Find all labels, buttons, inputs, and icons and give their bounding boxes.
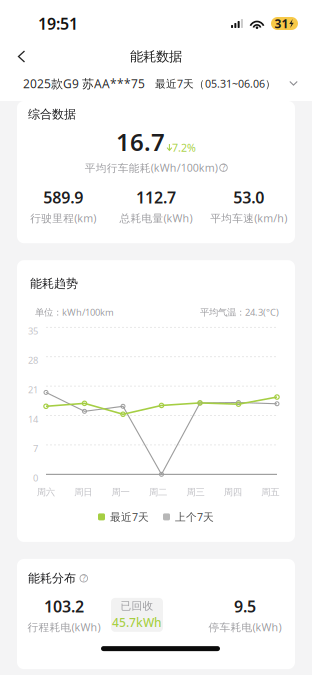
staticText: 2025款G9 苏AA***75	[23, 75, 145, 91]
staticText: 最近7天	[110, 510, 149, 524]
staticText: 能耗趋势	[30, 276, 78, 291]
staticText: 平均气温：24.3(°C)	[200, 306, 279, 318]
button[interactable]: 2025款G9 苏AA***75	[0, 71, 312, 95]
staticText: 总耗电量(kWh)	[119, 211, 192, 225]
staticText: 综合数据	[28, 107, 76, 122]
staticText: 行驶里程(km)	[30, 211, 96, 225]
staticText: 16.7	[116, 126, 165, 158]
staticText: 35	[28, 325, 38, 337]
staticText: 28	[28, 354, 38, 366]
staticText: 周一	[112, 486, 130, 498]
staticText: ?	[82, 573, 85, 584]
staticText: 能耗数据	[130, 48, 182, 65]
staticText: 停车耗电(kWh)	[208, 620, 281, 634]
staticText: 112.7	[136, 187, 176, 208]
staticText: 已回收	[120, 599, 153, 612]
staticText: 103.2	[44, 596, 84, 617]
staticText: 589.9	[43, 187, 83, 208]
staticText: 45.7kWh	[112, 614, 162, 630]
staticText: 最近7天（05.31~06.06）	[155, 76, 276, 91]
staticText: 周日	[74, 486, 92, 498]
staticText: 能耗分布	[28, 571, 76, 586]
staticText: 0	[33, 472, 38, 484]
staticText: 周三	[186, 486, 204, 498]
button[interactable]: Back	[0, 42, 38, 71]
staticText: 周四	[224, 486, 242, 498]
staticText: 19:51	[38, 13, 78, 34]
staticText: 31	[274, 15, 288, 31]
staticText: 上个7天	[175, 510, 214, 524]
staticText: 周二	[149, 486, 167, 498]
staticText: 单位：kWh/100km	[35, 306, 114, 318]
staticText: 7	[33, 442, 38, 455]
staticText: 周五	[261, 486, 279, 498]
staticText: 14	[28, 413, 38, 425]
staticText: 21	[28, 383, 38, 396]
staticText: 9.5	[234, 596, 256, 617]
staticText: ?	[222, 162, 225, 173]
staticText: 平均行车能耗(kWh/100km)	[85, 161, 218, 175]
staticText: 行程耗电(kWh)	[27, 620, 100, 634]
staticText: 周六	[37, 486, 55, 498]
staticText: 53.0	[233, 187, 264, 208]
staticText: 平均车速(km/h)	[210, 211, 287, 225]
staticText: 7.2%	[172, 140, 196, 155]
